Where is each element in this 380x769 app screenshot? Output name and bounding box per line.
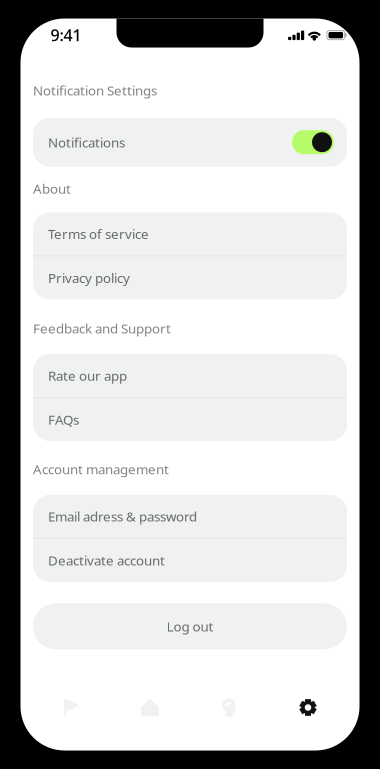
button[interactable]: Rate our app	[33, 354, 347, 397]
button[interactable]: Notifications	[292, 130, 334, 154]
button[interactable]: Privacy policy	[33, 256, 347, 299]
staticText: FAQs	[48, 411, 79, 428]
button[interactable]: Tips	[189, 685, 268, 729]
button[interactable]: FAQs	[33, 398, 347, 441]
staticText: Feedback and Support	[33, 319, 171, 337]
staticText: Deactivate account	[48, 551, 165, 569]
button[interactable]: Settings	[268, 685, 347, 729]
staticText: Notification Settings	[33, 81, 157, 99]
staticText: 9:41	[50, 24, 81, 46]
button[interactable]: Email adress & password	[33, 495, 347, 538]
staticText: Terms of service	[48, 225, 149, 243]
button[interactable]: Home	[110, 685, 189, 729]
staticText: Log out	[166, 617, 213, 635]
button[interactable]: Deactivate account	[33, 539, 347, 582]
staticText: Account management	[33, 460, 169, 478]
staticText: Rate our app	[48, 367, 127, 384]
button[interactable]: Log out	[33, 603, 347, 649]
staticText: Privacy policy	[48, 269, 130, 287]
staticText: Notifications	[48, 133, 125, 151]
staticText: Email adress & password	[48, 507, 197, 525]
staticText: About	[33, 180, 71, 197]
button[interactable]: Terms of service	[33, 212, 347, 255]
